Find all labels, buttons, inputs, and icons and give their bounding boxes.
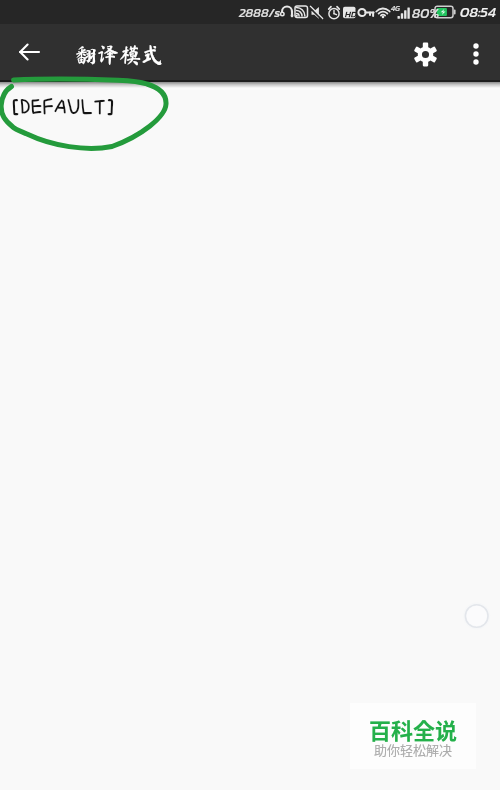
staticText: 助你轻松解决 xyxy=(374,740,453,759)
button[interactable]: More options xyxy=(454,24,500,80)
staticText: 翻译模式 xyxy=(75,44,164,66)
staticText: 80% xyxy=(412,3,440,24)
staticText: 2888/s xyxy=(239,3,281,22)
staticText: 08:54 xyxy=(460,1,496,23)
button[interactable]: Settings xyxy=(404,24,454,80)
staticText: 百科全说 xyxy=(369,713,458,745)
staticText: 4G xyxy=(391,3,400,14)
button[interactable]: Back xyxy=(0,24,56,80)
staticText: HD xyxy=(345,7,357,20)
staticText: [DEFAULT] xyxy=(10,95,116,120)
